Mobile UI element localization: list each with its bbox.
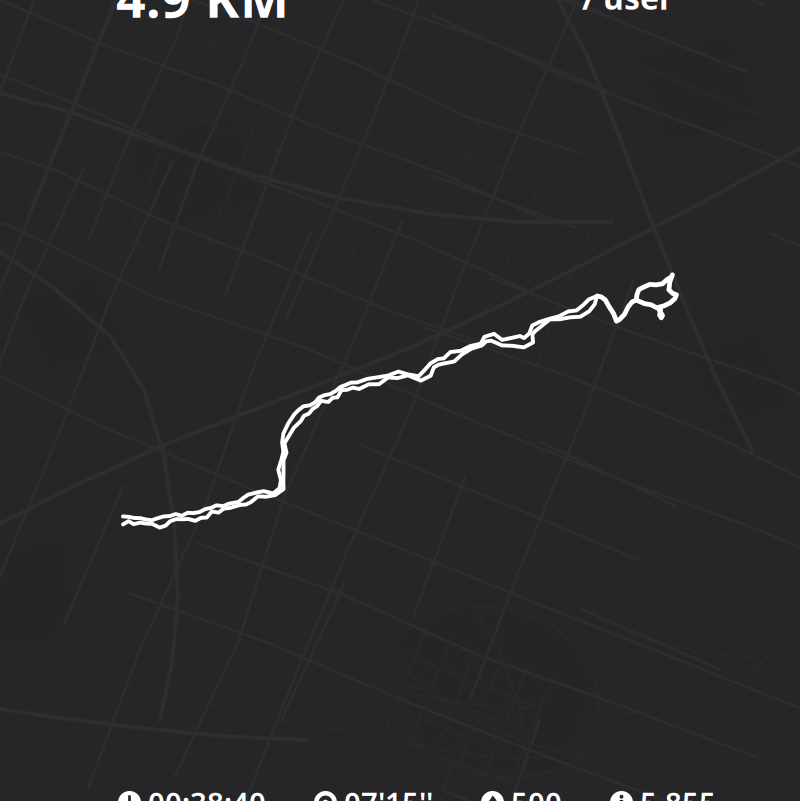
staticText: / user — [582, 0, 673, 18]
staticText: 00:38:40 — [148, 783, 266, 801]
staticText: 07'15'' — [344, 783, 433, 801]
staticText: 4.9 KM — [116, 0, 289, 32]
staticText: 500 — [511, 783, 562, 801]
button[interactable]: Steps — [610, 783, 716, 801]
staticText: 5,855 — [640, 783, 716, 801]
button[interactable]: Duration — [118, 783, 266, 801]
button[interactable]: Average pace — [314, 783, 433, 801]
button[interactable]: Calories — [481, 783, 562, 801]
